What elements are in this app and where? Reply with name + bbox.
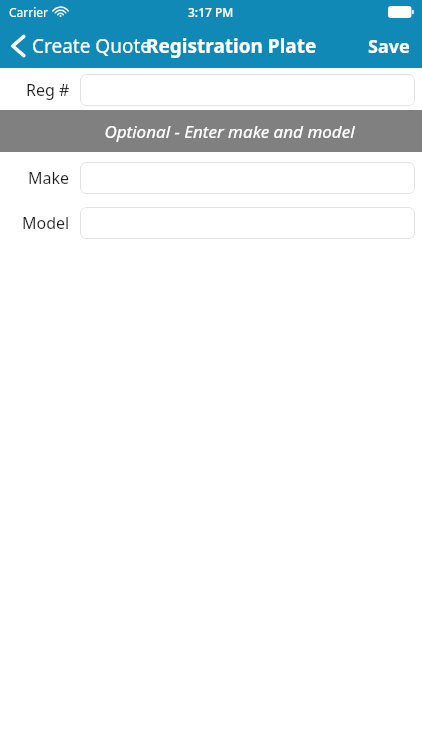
button[interactable] bbox=[80, 74, 415, 106]
button[interactable]: Model bbox=[0, 202, 422, 244]
staticText: Reg # bbox=[26, 79, 70, 101]
button[interactable]: Back bbox=[11, 33, 152, 59]
staticText: Registration Plate bbox=[146, 33, 317, 59]
button[interactable] bbox=[80, 207, 415, 239]
staticText: Optional - Enter make and model bbox=[104, 120, 355, 143]
button[interactable] bbox=[80, 162, 415, 194]
staticText: Make bbox=[28, 167, 70, 189]
staticText: Carrier bbox=[9, 4, 49, 20]
staticText: Model bbox=[22, 212, 70, 234]
staticText: Save bbox=[368, 34, 410, 59]
other: Back bbox=[11, 35, 25, 57]
button[interactable]: Reg # bbox=[0, 69, 422, 110]
button[interactable]: Make bbox=[0, 157, 422, 199]
button[interactable]: Save bbox=[356, 24, 422, 68]
staticText: Create Quote bbox=[32, 33, 152, 59]
staticText: 3:17 PM bbox=[188, 4, 234, 20]
